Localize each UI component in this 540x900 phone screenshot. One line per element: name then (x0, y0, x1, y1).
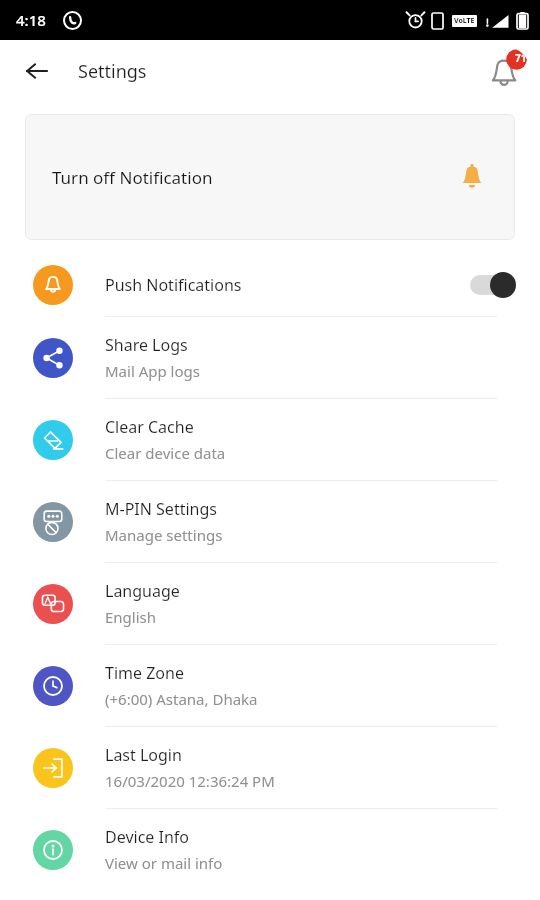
staticText: Turn off Notification (52, 166, 213, 189)
staticText: Mail App logs (105, 361, 200, 381)
button[interactable]: Device Info (0, 809, 540, 890)
staticText: 71 (515, 51, 527, 65)
button[interactable]: Last Login (0, 727, 540, 809)
button[interactable]: M-PIN Settings (0, 481, 540, 563)
staticText: Clear Cache (105, 416, 194, 438)
staticText: Push Notifications (105, 274, 242, 296)
staticText: (+6:00) Astana, Dhaka (105, 689, 258, 709)
staticText: M-PIN Settings (105, 498, 217, 520)
button[interactable]: Clear Cache (0, 399, 540, 481)
staticText: Time Zone (105, 662, 184, 684)
staticText: Clear device data (105, 443, 226, 463)
staticText: 4:18 (16, 10, 46, 30)
staticText: View or mail info (105, 853, 223, 873)
staticText: Last Login (105, 744, 182, 766)
staticText: Settings (78, 59, 147, 84)
button[interactable]: Language (0, 563, 540, 645)
staticText: Language (105, 580, 180, 602)
button[interactable]: Notifications, 71 unread (482, 47, 530, 95)
button[interactable]: Share Logs (0, 317, 540, 399)
staticText: VoLTE (454, 16, 475, 26)
staticText: English (105, 607, 157, 627)
button[interactable]: Push notifications toggle (466, 272, 516, 298)
staticText: Share Logs (105, 334, 188, 356)
button[interactable]: Push Notifications (0, 254, 540, 317)
button[interactable]: Turn off Notification (25, 114, 515, 240)
staticText: Device Info (105, 826, 190, 848)
button[interactable]: Back (14, 48, 60, 94)
staticText: Manage settings (105, 525, 223, 545)
button[interactable]: Time Zone (0, 645, 540, 727)
staticText: 16/03/2020 12:36:24 PM (105, 771, 275, 791)
